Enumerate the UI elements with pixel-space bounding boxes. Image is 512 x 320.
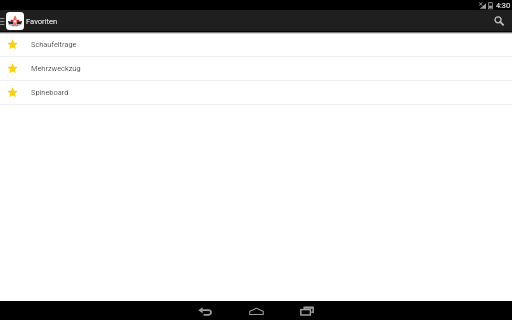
- button[interactable]: Spineboard: [0, 81, 512, 105]
- staticText: Mehrzweckzug: [31, 64, 81, 73]
- staticText: Spineboard: [31, 88, 69, 97]
- button[interactable]: Search: [488, 10, 509, 31]
- button[interactable]: Home: [238, 301, 274, 320]
- staticText: 4:30: [496, 1, 511, 10]
- staticText: Schaufeltrage: [31, 40, 77, 49]
- button[interactable]: Schaufeltrage: [0, 33, 512, 57]
- button[interactable]: Navigate up: [0, 10, 24, 31]
- staticText: Favoriten: [26, 17, 58, 26]
- button[interactable]: Back: [187, 301, 223, 320]
- button[interactable]: Mehrzweckzug: [0, 57, 512, 81]
- button[interactable]: Recent apps: [289, 301, 325, 320]
